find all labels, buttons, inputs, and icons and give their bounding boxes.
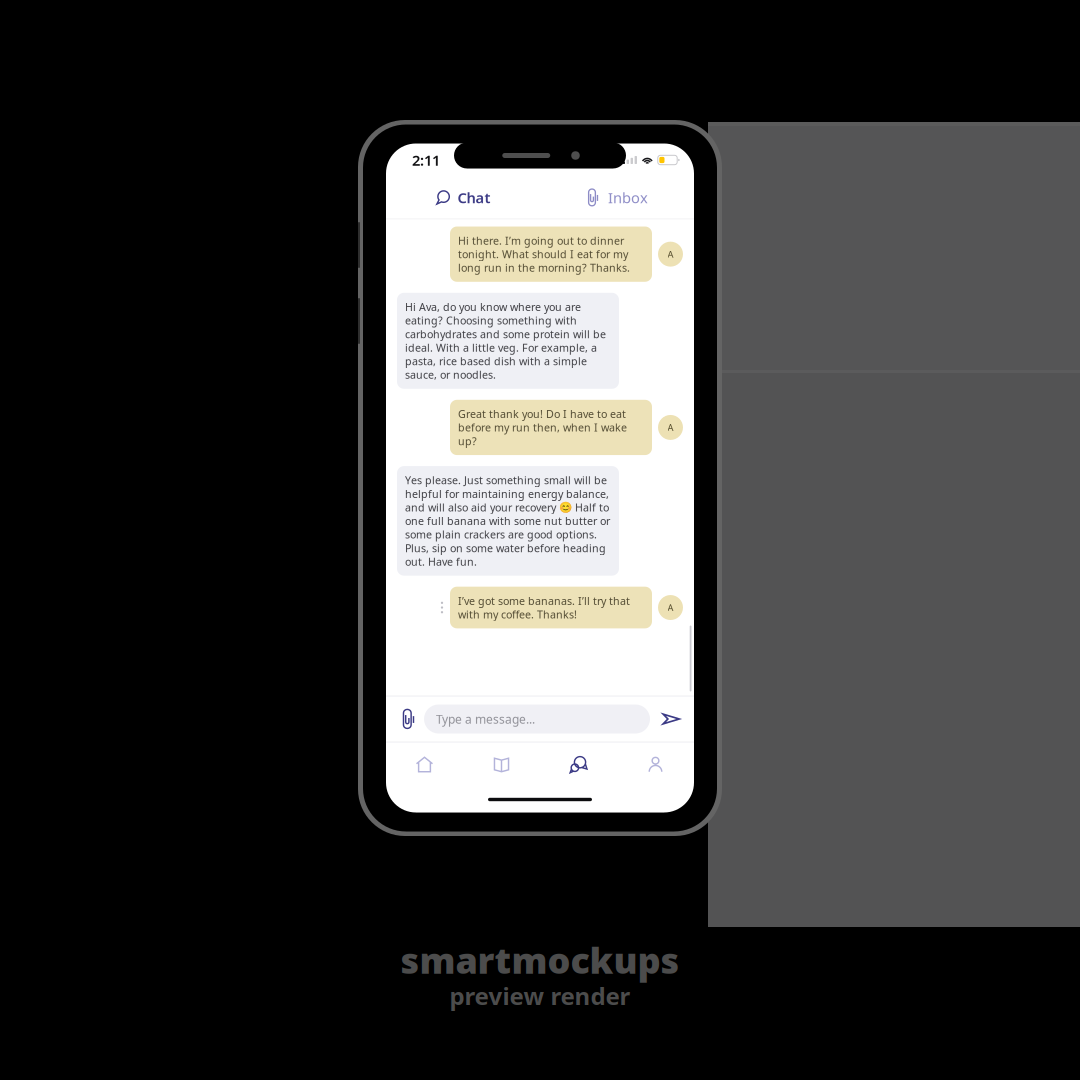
staticText: Yes please. Just something small will be…	[405, 473, 610, 569]
button[interactable]: Library	[463, 743, 540, 785]
staticText: 2:11	[412, 150, 440, 170]
staticText: Great thank you! Do I have to eat before…	[458, 407, 627, 448]
staticText: Hi there. I’m going out to dinner tonigh…	[458, 233, 630, 275]
staticText: smartmockups	[400, 936, 679, 984]
staticText: Type a message...	[436, 711, 535, 727]
button[interactable]: Inbox	[540, 179, 694, 215]
button[interactable]: Chat	[540, 743, 617, 785]
staticText: preview render	[449, 980, 630, 1012]
staticText: A	[667, 421, 673, 434]
staticText: Inbox	[608, 188, 648, 207]
button[interactable]: Send	[650, 699, 692, 739]
staticText: A	[667, 248, 673, 260]
staticText: Chat	[457, 188, 490, 207]
button[interactable]: Chat	[386, 179, 540, 215]
button[interactable]: Message options	[434, 595, 450, 619]
staticText: I’ve got some bananas. I’ll try that wit…	[458, 594, 630, 621]
staticText: Hi Ava, do you know where you are eating…	[405, 300, 606, 382]
button[interactable]: Profile	[617, 743, 694, 785]
button[interactable]: Home	[386, 743, 463, 785]
staticText: A	[667, 601, 673, 614]
button[interactable]: Attach file	[394, 699, 424, 739]
